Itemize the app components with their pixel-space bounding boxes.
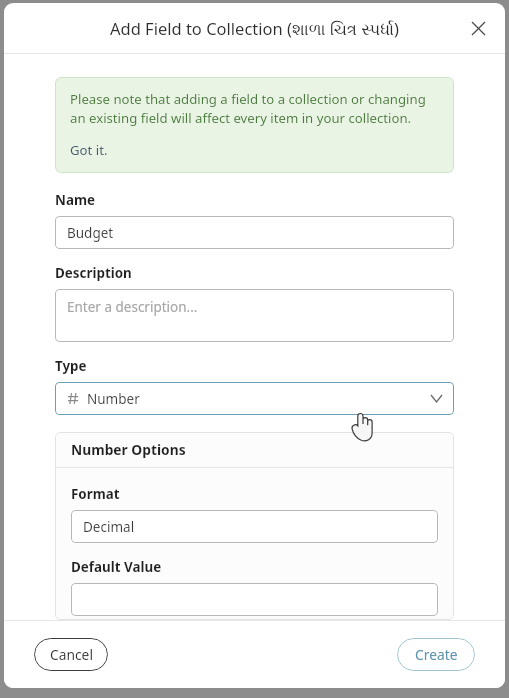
button[interactable]: Enter a description... bbox=[55, 289, 454, 342]
staticText: Decimal bbox=[83, 518, 135, 536]
staticText: Format bbox=[71, 485, 120, 503]
button[interactable]: Close bbox=[465, 15, 491, 41]
button[interactable]: Cancel bbox=[34, 638, 108, 671]
button[interactable]: Create bbox=[397, 638, 475, 671]
button[interactable] bbox=[71, 583, 438, 616]
button[interactable]: Budget bbox=[55, 216, 454, 249]
staticText: Number Options bbox=[71, 440, 186, 459]
staticText: Got it. bbox=[70, 141, 108, 159]
staticText: Enter a description... bbox=[67, 298, 198, 316]
staticText: Add Field to Collection (શાળા ચિત્ર સ્પર… bbox=[44, 17, 465, 39]
staticText: Please note that adding a field to a col… bbox=[70, 90, 440, 127]
button[interactable]: Got it. bbox=[70, 141, 108, 159]
staticText: Type bbox=[55, 357, 87, 375]
button[interactable]: Decimal bbox=[71, 510, 438, 543]
button[interactable]: Number bbox=[55, 382, 454, 415]
staticText: Cancel bbox=[50, 645, 93, 664]
staticText: Create bbox=[415, 645, 458, 664]
staticText: Budget bbox=[67, 224, 114, 242]
staticText: Default Value bbox=[71, 558, 162, 576]
staticText: Name bbox=[55, 191, 95, 209]
staticText: Number bbox=[87, 390, 431, 408]
staticText: Description bbox=[55, 264, 132, 282]
